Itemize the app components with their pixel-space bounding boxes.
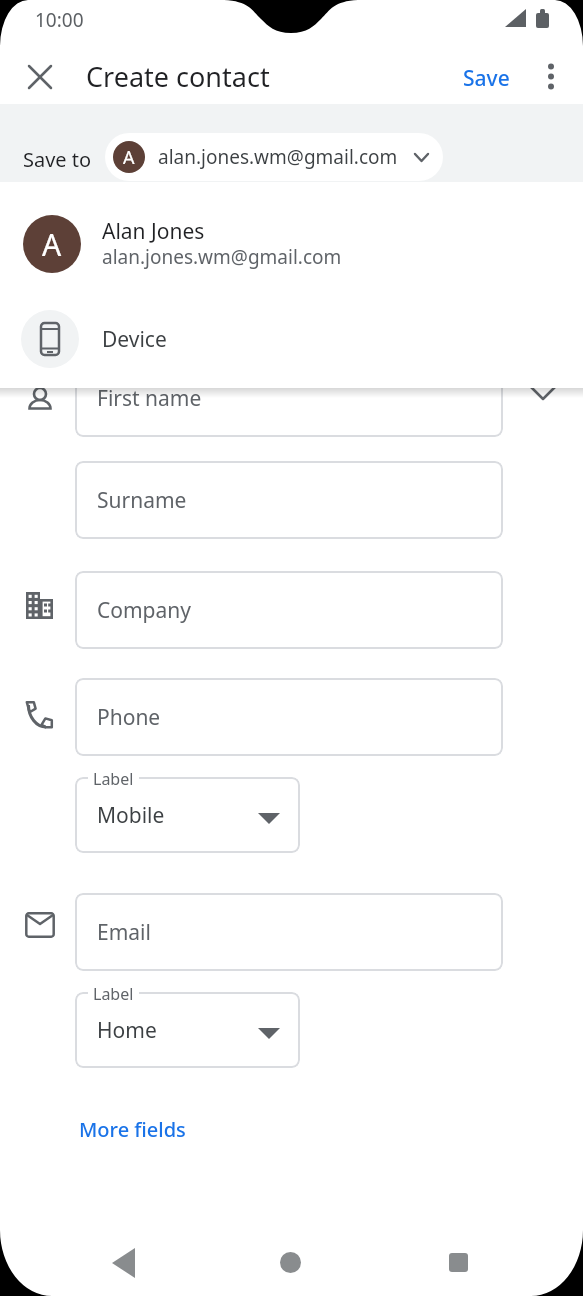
button[interactable]: Company bbox=[75, 571, 503, 649]
staticText: alan.jones.wm@gmail.com bbox=[158, 144, 398, 170]
staticText: Save bbox=[463, 64, 510, 93]
button[interactable]: Phone bbox=[75, 678, 503, 756]
button[interactable] bbox=[539, 64, 563, 88]
staticText: A bbox=[123, 145, 135, 170]
button[interactable]: A bbox=[0, 182, 583, 285]
staticText: A bbox=[42, 224, 62, 265]
button[interactable]: A bbox=[105, 133, 443, 181]
staticText: Company bbox=[97, 596, 191, 625]
staticText: Alan Jones bbox=[102, 217, 205, 246]
staticText: 10:00 bbox=[35, 7, 84, 33]
button[interactable]: More fields bbox=[75, 1112, 190, 1147]
button[interactable]: Mobile bbox=[75, 777, 300, 853]
button[interactable]: Device bbox=[0, 285, 583, 388]
staticText: Surname bbox=[97, 486, 187, 515]
button[interactable]: Home bbox=[75, 992, 300, 1068]
staticText: Create contact bbox=[86, 58, 270, 95]
staticText: Home bbox=[97, 1016, 157, 1045]
staticText: Email bbox=[97, 918, 151, 947]
staticText: Device bbox=[102, 325, 167, 354]
button[interactable] bbox=[530, 386, 556, 400]
button[interactable] bbox=[101, 1248, 137, 1278]
staticText: More fields bbox=[79, 1116, 186, 1143]
button[interactable]: First name bbox=[75, 359, 503, 437]
staticText: Label bbox=[93, 768, 134, 790]
staticText: First name bbox=[97, 384, 202, 413]
staticText: alan.jones.wm@gmail.com bbox=[102, 244, 342, 270]
staticText: Save to bbox=[23, 146, 92, 173]
staticText: Label bbox=[93, 983, 134, 1005]
button[interactable]: Surname bbox=[75, 461, 503, 539]
staticText: Phone bbox=[97, 703, 161, 732]
button[interactable] bbox=[28, 65, 52, 89]
button[interactable] bbox=[449, 1253, 468, 1272]
staticText: Mobile bbox=[97, 801, 165, 830]
button[interactable]: Save bbox=[455, 56, 518, 101]
button[interactable]: Email bbox=[75, 893, 503, 971]
button[interactable] bbox=[280, 1252, 301, 1273]
